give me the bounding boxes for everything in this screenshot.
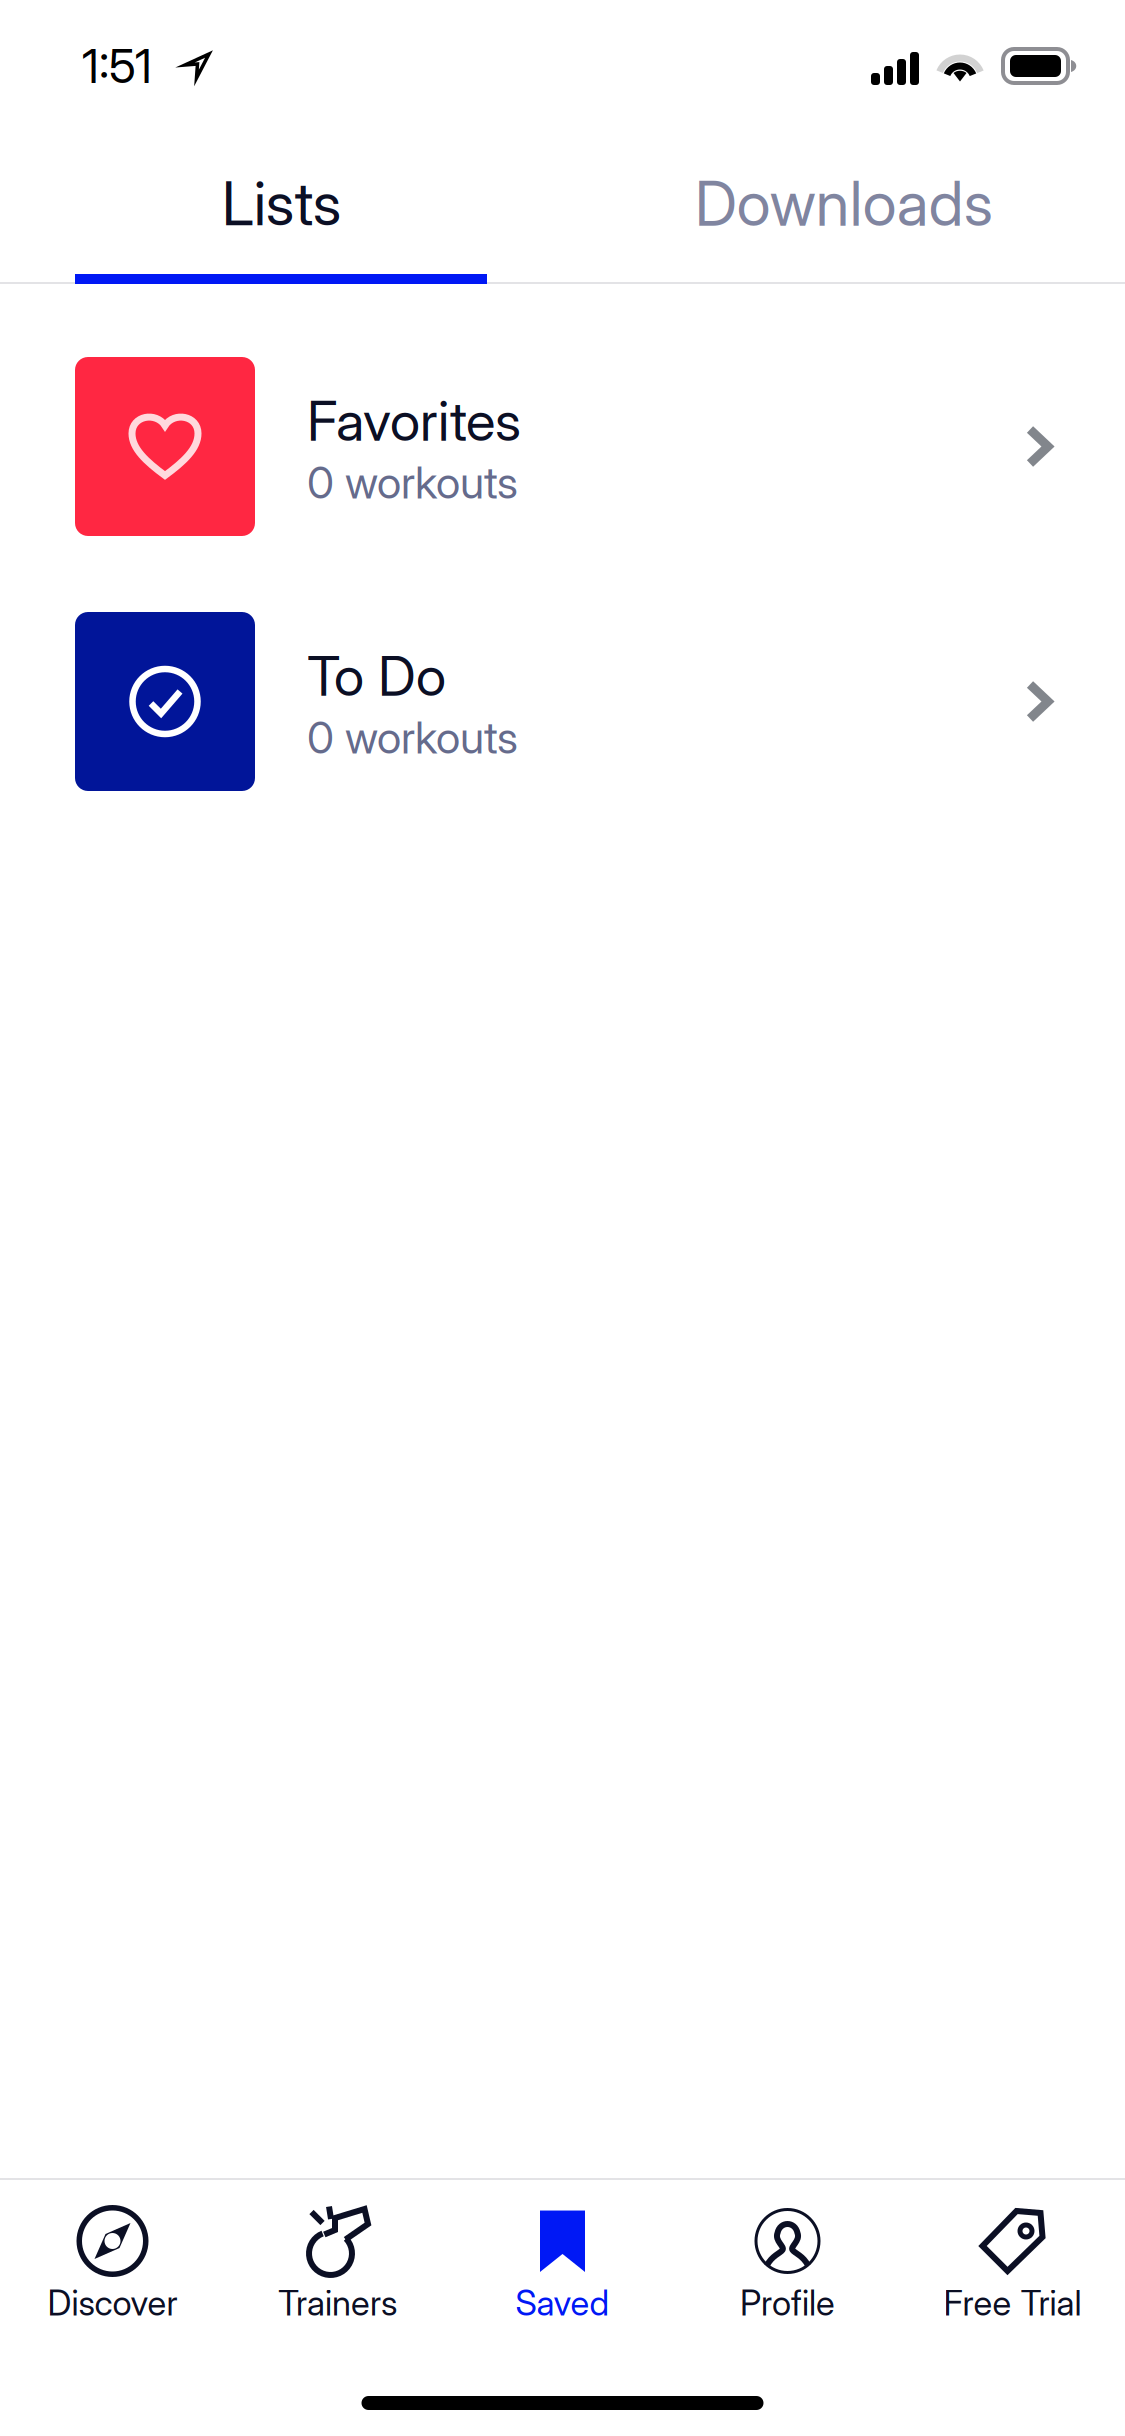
staticText: Favorites: [307, 388, 521, 454]
staticText: Lists: [222, 167, 341, 240]
button[interactable]: Free Trial: [900, 2180, 1125, 2324]
button[interactable]: Saved: [450, 2180, 675, 2324]
staticText: Discover: [47, 2282, 177, 2324]
staticText: Free Trial: [943, 2282, 1081, 2324]
staticText: Saved: [515, 2282, 609, 2324]
button[interactable]: Downloads: [562, 132, 1125, 275]
staticText: To Do: [307, 643, 446, 709]
button[interactable]: Discover: [0, 2180, 225, 2324]
staticText: Profile: [740, 2282, 835, 2324]
staticText: Trainers: [278, 2282, 397, 2324]
button[interactable]: Trainers: [225, 2180, 450, 2324]
button[interactable]: Favorites: [0, 357, 1125, 536]
staticText: 0 workouts: [307, 456, 518, 509]
staticText: 1:51: [82, 38, 152, 94]
staticText: Downloads: [695, 166, 993, 241]
button[interactable]: Lists: [0, 132, 562, 275]
button[interactable]: To Do: [0, 612, 1125, 791]
button[interactable]: Profile: [675, 2180, 900, 2324]
staticText: 0 workouts: [307, 711, 518, 764]
